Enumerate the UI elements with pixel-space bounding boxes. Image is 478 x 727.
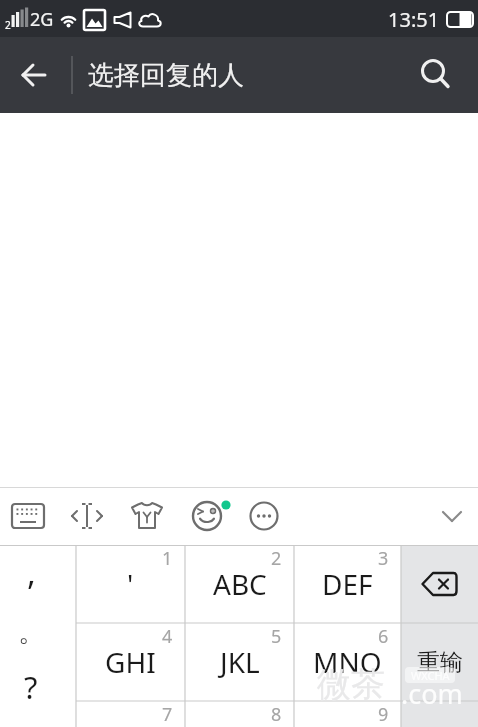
button[interactable]: 8	[185, 701, 294, 727]
staticText: .com	[401, 675, 463, 712]
staticText: 2	[271, 546, 282, 571]
staticText: 4	[162, 624, 173, 649]
staticText: ?	[24, 666, 38, 708]
button[interactable]: '	[76, 545, 185, 623]
staticText: 6	[378, 624, 389, 649]
button[interactable]: 9	[294, 701, 401, 727]
button[interactable]: GHI	[76, 623, 185, 701]
staticText: 。	[18, 615, 45, 649]
staticText: '	[127, 565, 134, 603]
button[interactable]: ,	[0, 550, 62, 594]
staticText: 5	[271, 624, 282, 649]
staticText: 9	[378, 702, 389, 727]
staticText: 重输	[417, 648, 463, 677]
button[interactable]	[10, 51, 58, 99]
button[interactable]: 重输	[401, 623, 478, 701]
staticText: 2	[5, 18, 11, 32]
staticText: 2G	[30, 7, 54, 32]
staticText: ABC	[213, 565, 267, 603]
staticText: DEF	[322, 565, 373, 603]
staticText: 7	[162, 702, 173, 727]
button[interactable]: ABC	[185, 545, 294, 623]
button[interactable]: 。	[0, 610, 62, 654]
button[interactable]	[123, 493, 171, 541]
button[interactable]	[410, 61, 462, 113]
button[interactable]	[401, 545, 478, 623]
staticText: 微茶	[317, 663, 385, 706]
button[interactable]: MNO	[294, 623, 401, 701]
staticText: 8	[271, 702, 282, 727]
button[interactable]	[63, 493, 111, 541]
button[interactable]	[240, 493, 288, 541]
button[interactable]: DEF	[294, 545, 401, 623]
button[interactable]	[183, 493, 231, 541]
staticText: WXCHA	[411, 668, 450, 683]
staticText: 3	[378, 546, 389, 571]
staticText: 13:51	[388, 6, 440, 33]
button[interactable]: 7	[76, 701, 185, 727]
button[interactable]: JKL	[185, 623, 294, 701]
staticText: GHI	[105, 643, 156, 681]
button[interactable]	[4, 493, 52, 541]
staticText: MNO	[313, 643, 382, 681]
staticText: 1	[162, 546, 173, 571]
staticText: ,	[27, 550, 36, 594]
staticText: 选择回复的人	[88, 59, 244, 92]
button[interactable]	[428, 493, 476, 541]
staticText: JKL	[220, 643, 260, 681]
button[interactable]: ?	[0, 665, 62, 709]
